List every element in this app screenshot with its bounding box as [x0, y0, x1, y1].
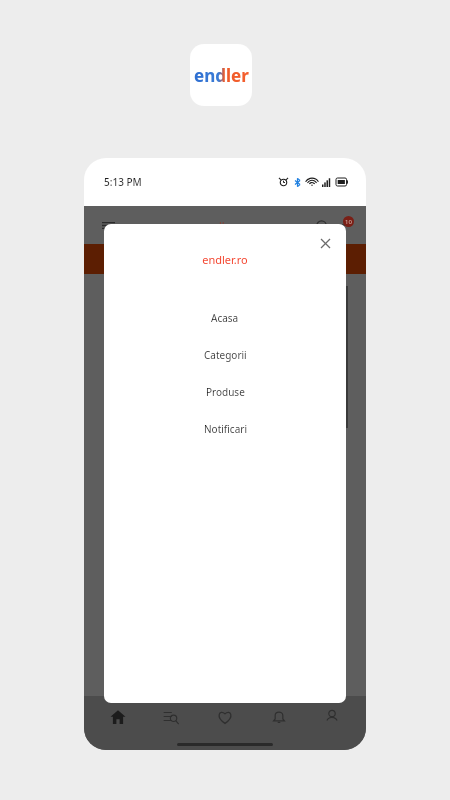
button[interactable]: Menu: [102, 219, 115, 232]
staticText: 10: [345, 218, 352, 226]
button[interactable]: Cart: [336, 216, 354, 234]
button[interactable]: Notificari: [104, 410, 346, 447]
button[interactable]: Acasa: [104, 299, 346, 336]
button[interactable]: Catalog: [151, 697, 191, 737]
button[interactable]: Home: [98, 697, 138, 737]
button[interactable]: Close: [316, 234, 334, 252]
button[interactable]: endler.ro: [104, 252, 346, 267]
button[interactable]: Favorites: [205, 697, 245, 737]
button[interactable]: endler app icon: [190, 44, 252, 106]
staticText: Acasa: [211, 311, 239, 325]
button[interactable]: Account: [312, 697, 352, 737]
staticText: 5:13 PM: [104, 175, 142, 189]
staticText: endler: [194, 64, 249, 87]
button[interactable]: Produse: [104, 373, 346, 410]
staticText: Notificari: [204, 422, 247, 436]
button[interactable]: Search: [315, 219, 328, 232]
staticText: Produse: [206, 385, 245, 399]
button[interactable]: Notifications: [259, 697, 299, 737]
staticText: Categorii: [204, 348, 247, 362]
staticText: endler.ro: [202, 218, 248, 233]
button[interactable]: Categorii: [104, 336, 346, 373]
